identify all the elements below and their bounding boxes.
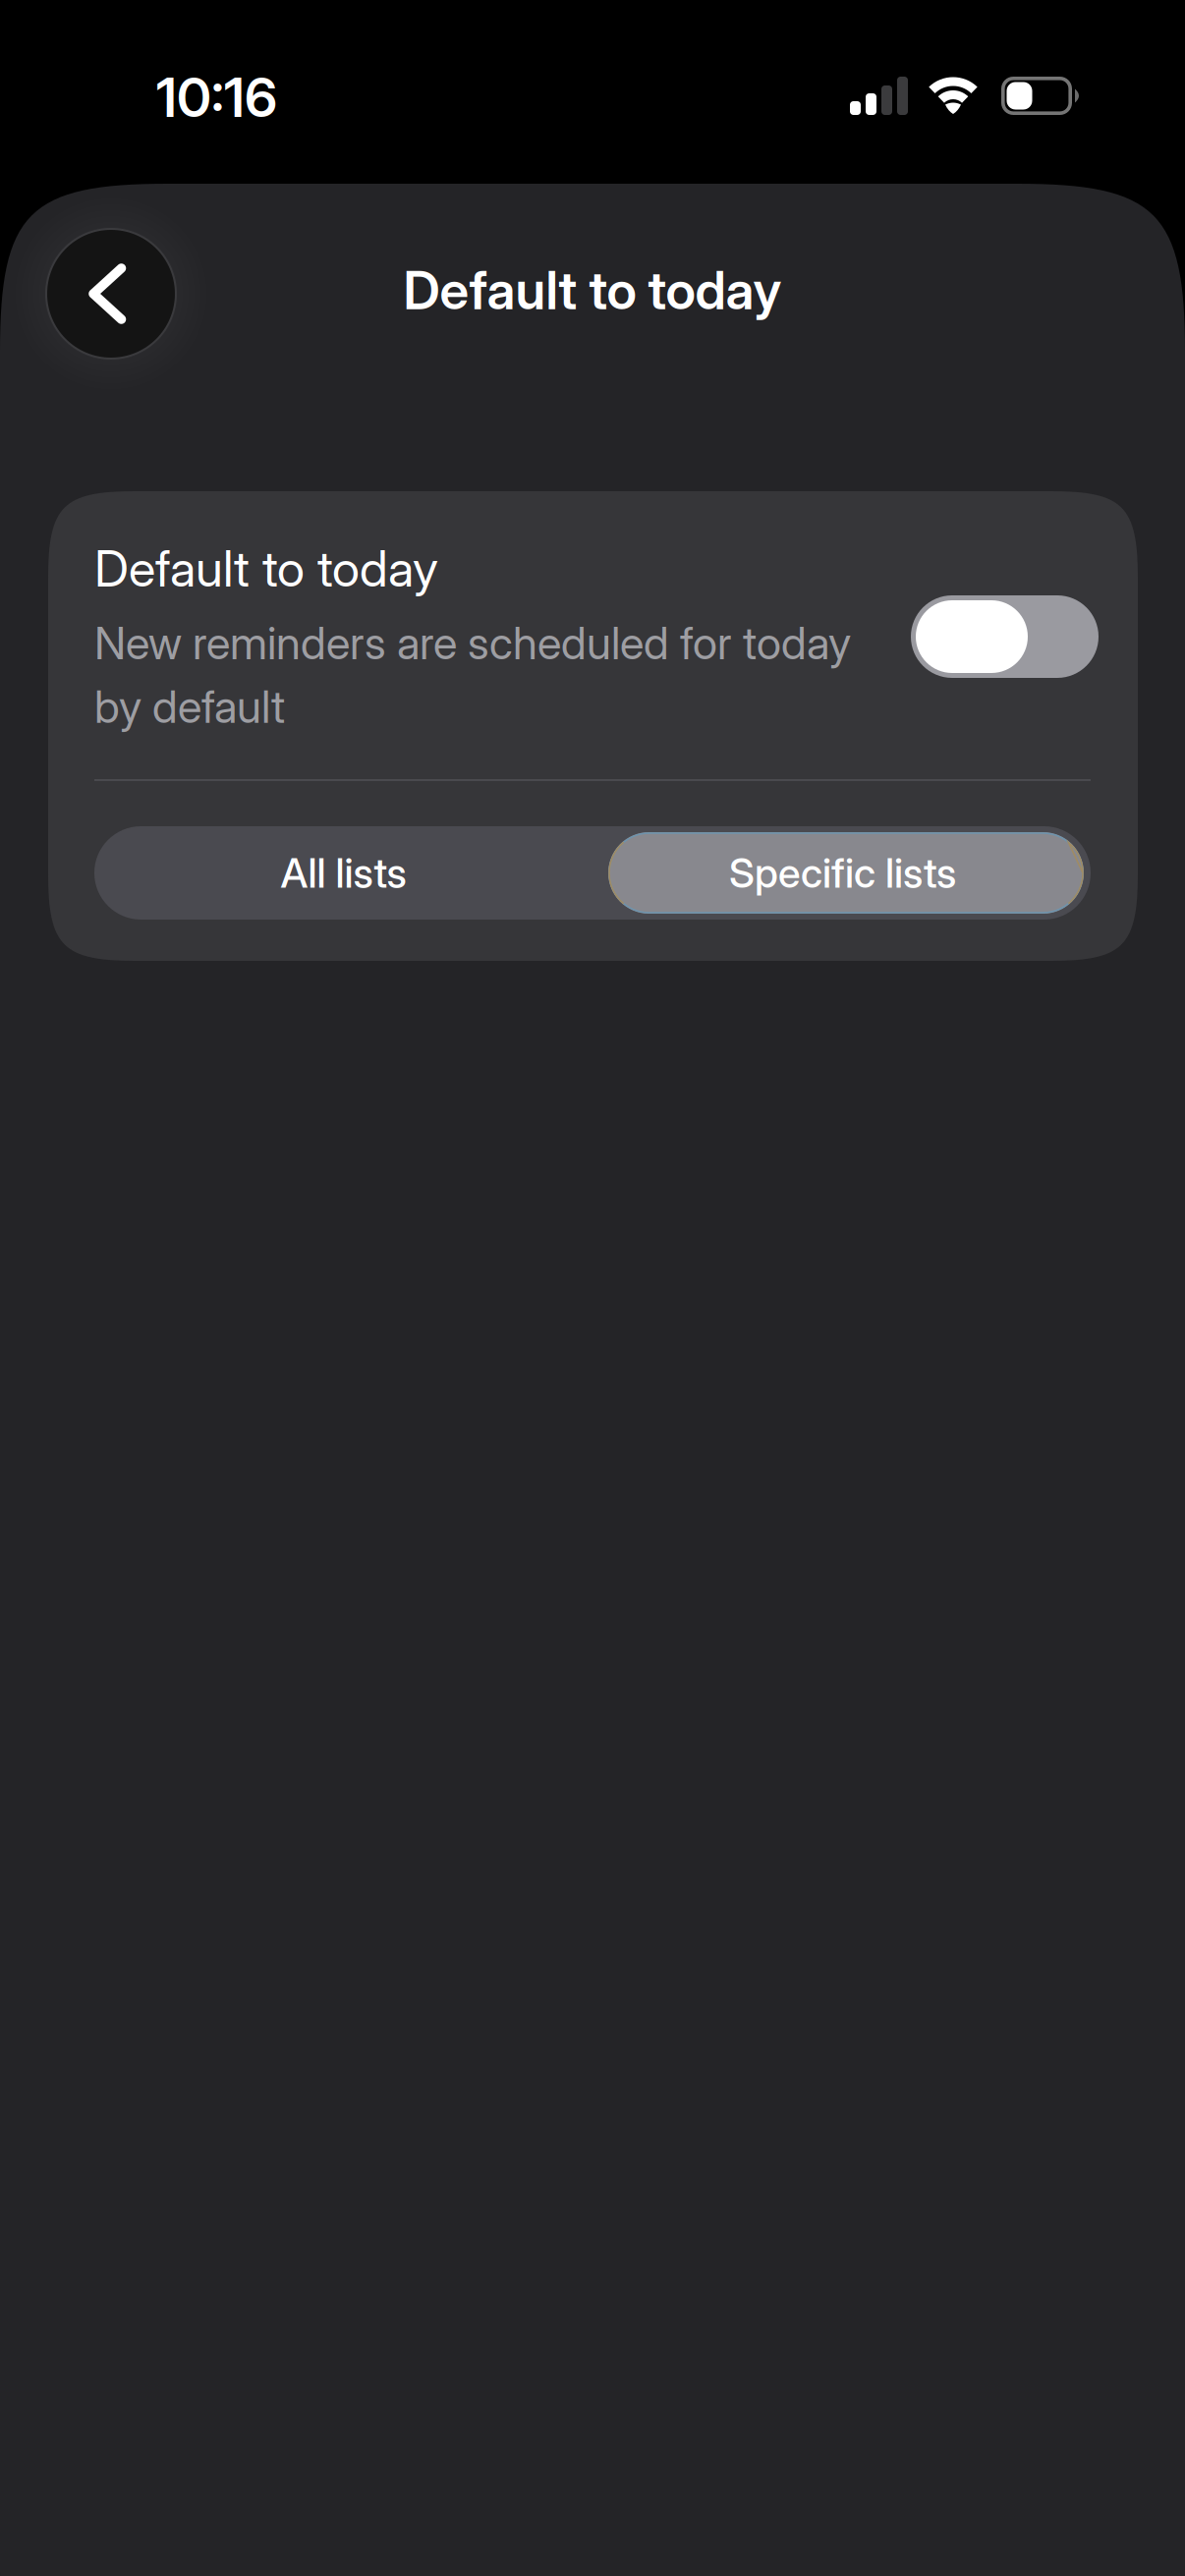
staticText: All lists [281,848,406,897]
staticText: Specific lists [729,848,956,897]
staticText: 10:16 [156,65,277,130]
button[interactable]: Default to today [911,595,1099,678]
button[interactable]: Back [46,229,176,359]
button[interactable]: Specific lists [601,826,1084,920]
button[interactable]: All lists [94,826,592,920]
staticText: New reminders are scheduled for today by… [94,616,851,734]
staticText: Default to today [94,538,438,599]
staticText: Default to today [403,258,782,322]
